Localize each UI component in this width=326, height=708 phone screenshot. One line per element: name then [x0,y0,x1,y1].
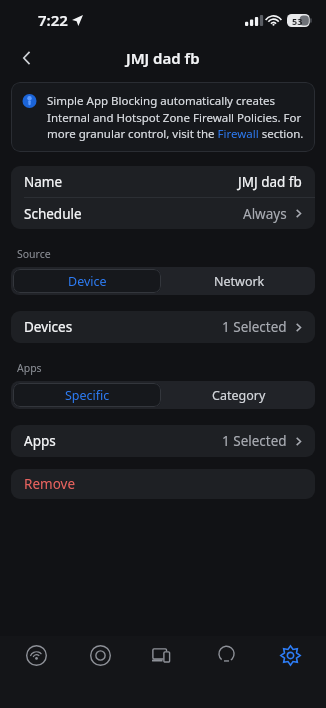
button[interactable]: Schedule [11,198,315,229]
staticText: Schedule [24,205,82,223]
button[interactable]: Devices [11,311,315,343]
staticText: Simple App Blocking automatically create… [47,93,304,141]
button[interactable]: Network [165,269,313,293]
button[interactable]: Insights [199,636,253,688]
button[interactable]: Settings [263,636,317,688]
staticText: JMJ dad fb [238,173,302,191]
button[interactable]: Remove [11,469,315,499]
staticText: Remove [24,475,76,493]
button[interactable]: Specific [13,383,161,407]
staticText: Name [24,173,63,191]
button[interactable]: Monitor [73,636,127,688]
button[interactable]: Back [10,41,44,75]
staticText: 1 Selected [222,432,287,450]
staticText: Always [243,205,287,223]
button[interactable]: Dashboard [9,636,63,688]
staticText: Network [214,273,265,290]
button[interactable]: Apps [11,425,315,457]
staticText: 7:22 [38,10,68,30]
staticText: Specific [65,387,110,404]
staticText: 1 Selected [222,318,287,336]
staticText: Apps [17,361,42,375]
staticText: Device [68,273,107,290]
staticText: Apps [24,432,56,450]
staticText: JMJ dad fb [126,48,200,68]
button[interactable]: Category [165,383,313,407]
button[interactable]: Devices [136,636,190,688]
staticText: 53 [292,15,303,27]
button[interactable]: Name [11,166,315,197]
staticText: Category [212,387,266,404]
staticText: Source [17,247,51,261]
button[interactable]: Device [13,269,161,293]
staticText: Devices [24,318,73,336]
